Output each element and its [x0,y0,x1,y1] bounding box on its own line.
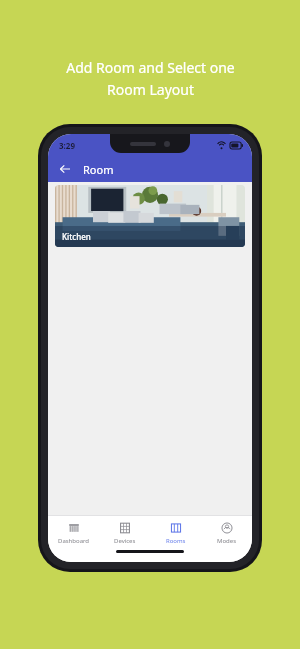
staticText: Room Layout [107,80,194,99]
staticText: Devices [114,537,136,545]
staticText: Modes [217,537,237,545]
button[interactable]: Modes [201,516,252,550]
button[interactable]: Kitchen [55,185,245,247]
button[interactable]: Dashboard [48,516,99,550]
staticText: Dashboard [58,537,90,545]
button[interactable]: Rooms [150,516,201,550]
staticText: Rooms [166,537,186,545]
button[interactable]: Devices [99,516,150,550]
staticText: Kitchen [62,231,91,242]
staticText: Room [83,162,114,177]
staticText: Add Room and Select one [66,58,235,77]
button[interactable]: Back [54,158,76,180]
staticText: 3:29 [59,140,75,151]
